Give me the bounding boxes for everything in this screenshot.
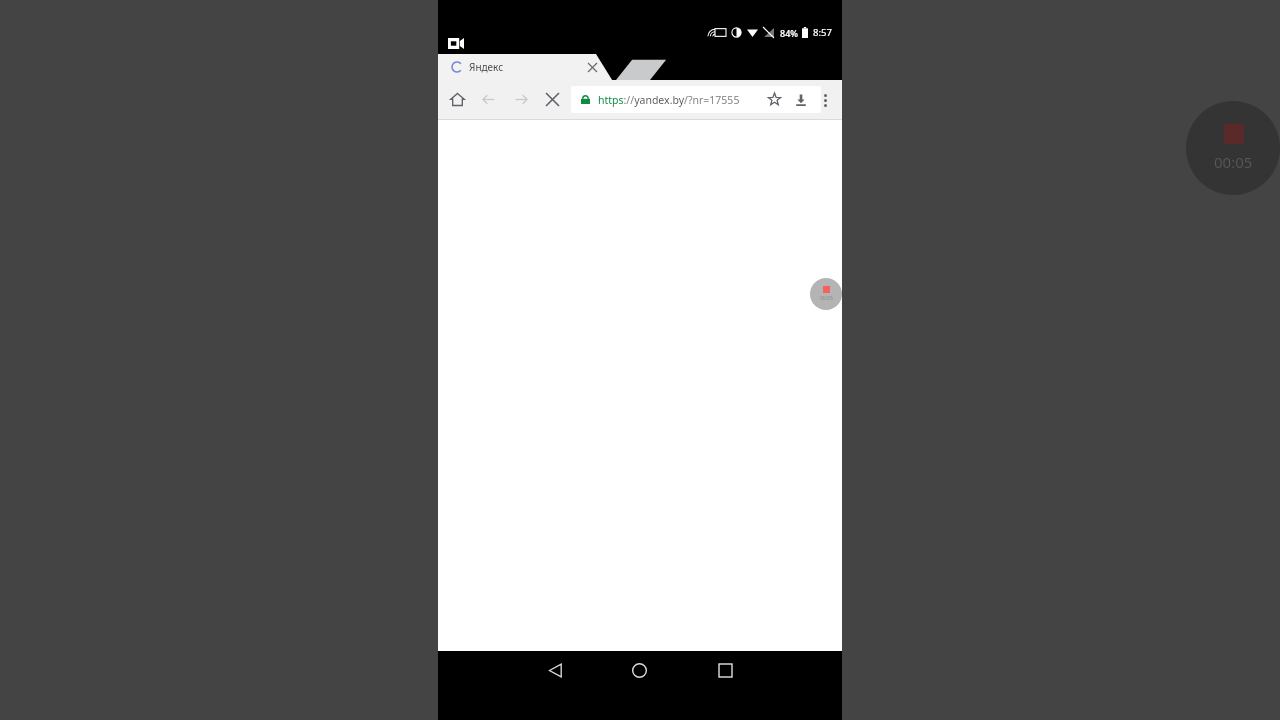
- button[interactable]: Stop recording: [810, 278, 842, 310]
- button[interactable]: https://yandex.by/?nr=17555: [571, 86, 821, 113]
- button[interactable]: Downloads: [795, 94, 807, 106]
- staticText: 8:57: [813, 26, 832, 39]
- staticText: Яндекс: [469, 60, 504, 74]
- button[interactable]: Bookmark: [768, 93, 781, 106]
- button[interactable]: More options: [812, 87, 838, 113]
- button[interactable]: Stop recording: [1186, 101, 1280, 195]
- staticText: 00:05: [1214, 152, 1253, 172]
- staticText: https://yandex.by/?nr=17555: [598, 93, 740, 107]
- button[interactable]: Home: [632, 663, 647, 678]
- button[interactable]: Stop loading: [546, 93, 559, 106]
- button[interactable]: Back: [548, 663, 563, 678]
- staticText: 00:05: [820, 295, 833, 302]
- button[interactable]: Recent apps: [719, 664, 732, 677]
- button[interactable]: Home: [450, 92, 465, 107]
- button[interactable]: Forward: [514, 92, 529, 107]
- staticText: 84%: [780, 27, 798, 39]
- button[interactable]: Back: [481, 92, 496, 107]
